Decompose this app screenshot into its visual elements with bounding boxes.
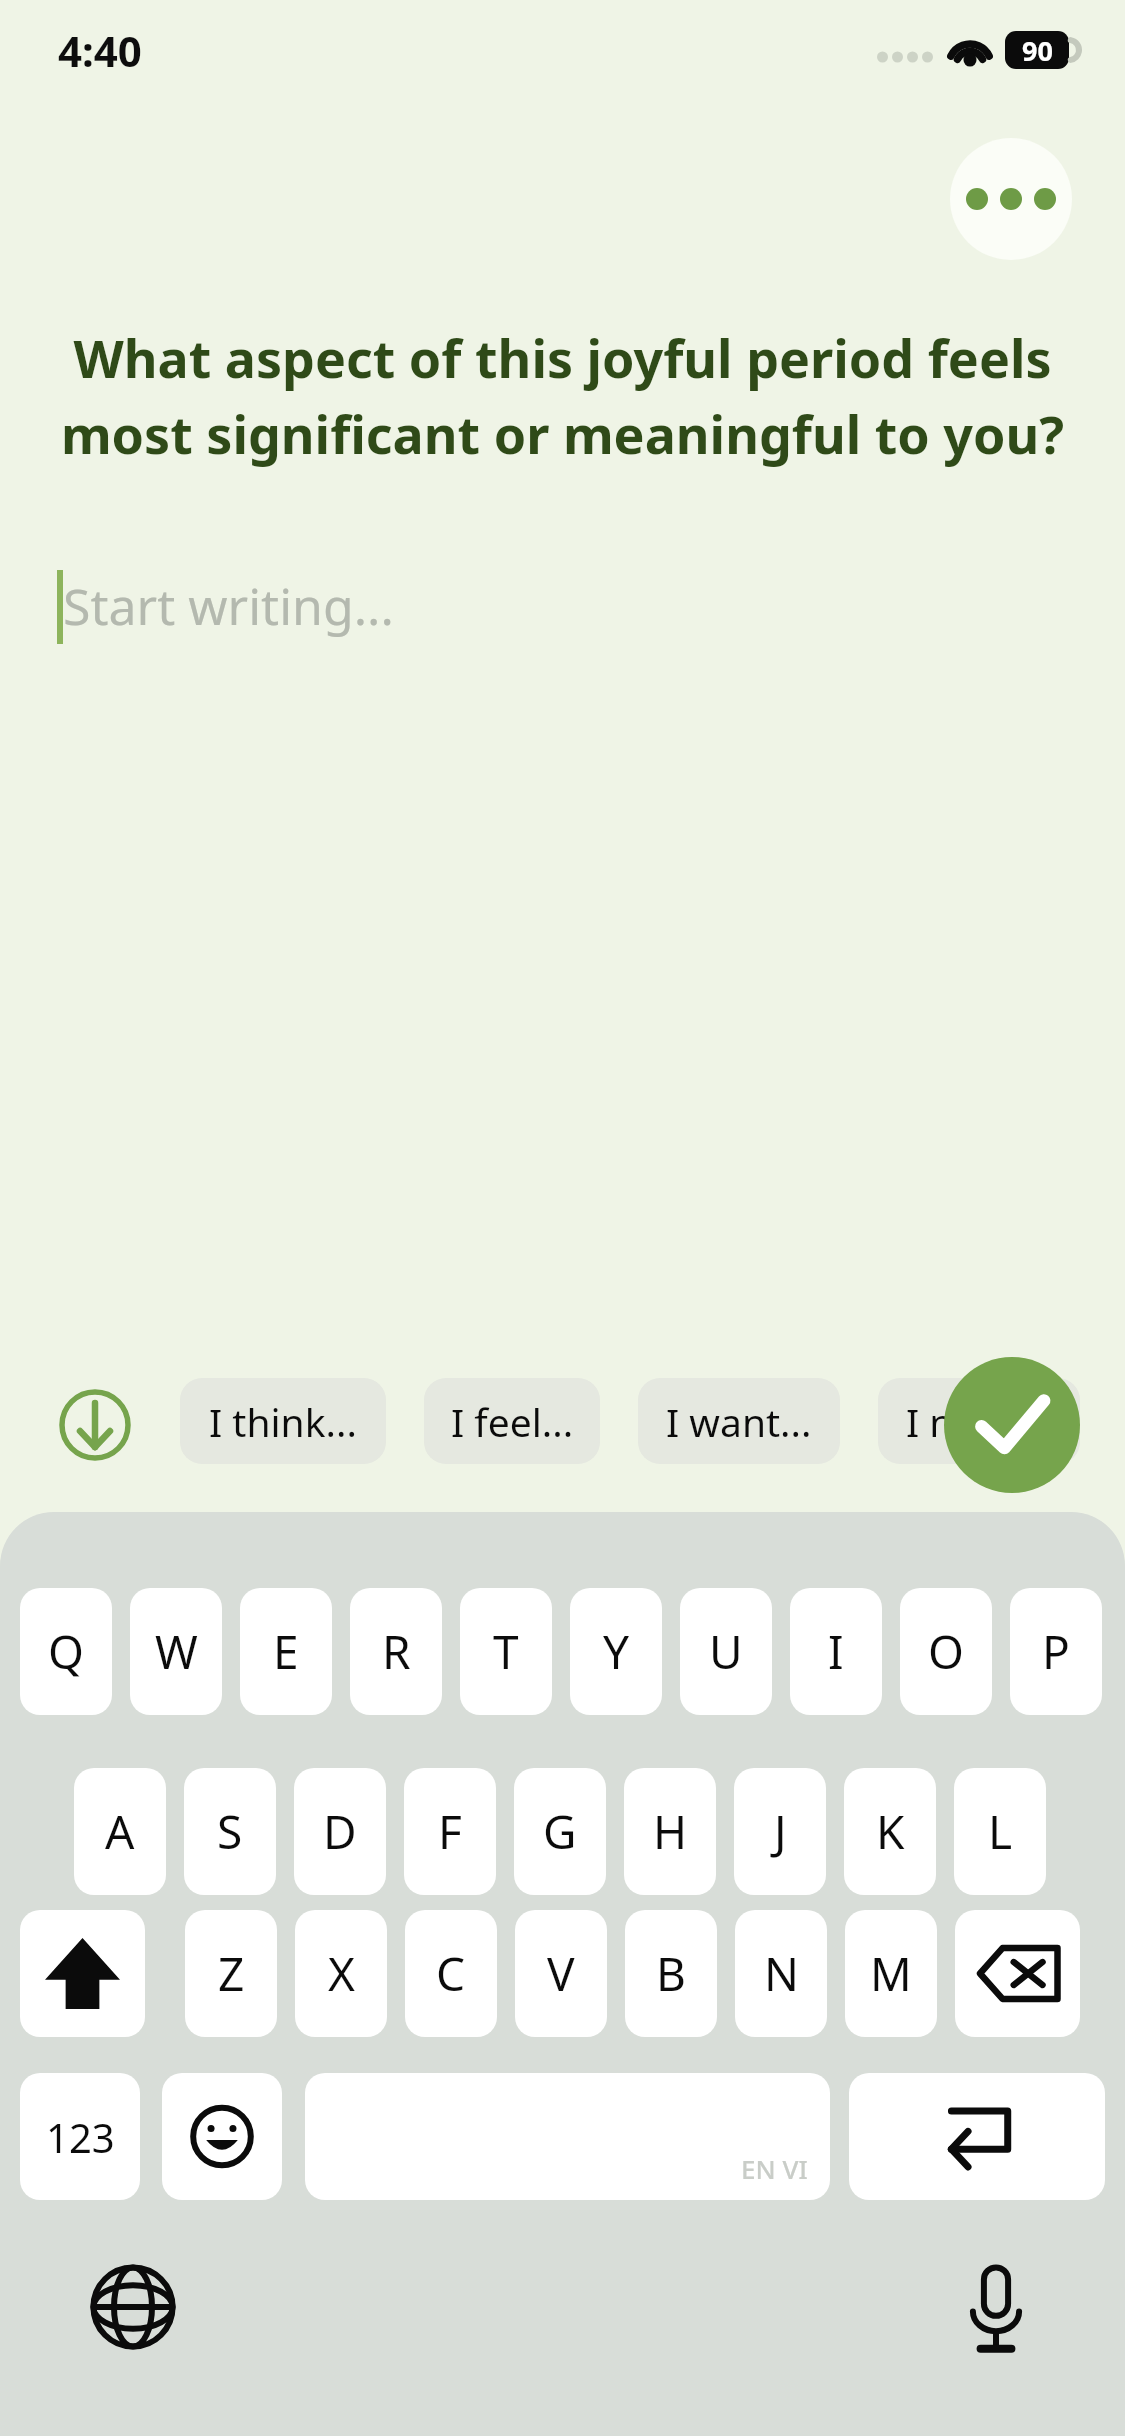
button[interactable]: I think... xyxy=(180,1378,386,1464)
button[interactable]: Z xyxy=(185,1910,277,2037)
button[interactable]: W xyxy=(130,1588,222,1715)
staticText: 4:40 xyxy=(58,22,142,79)
staticText: M xyxy=(870,1942,912,2005)
button[interactable]: 123 xyxy=(20,2073,140,2200)
button[interactable]: Enter xyxy=(849,2073,1105,2200)
button[interactable]: H xyxy=(624,1768,716,1895)
staticText: I xyxy=(828,1620,844,1683)
button[interactable]: Change language xyxy=(78,2252,188,2362)
button[interactable]: L xyxy=(954,1768,1046,1895)
staticText: H xyxy=(653,1800,688,1863)
button[interactable]: D xyxy=(294,1768,386,1895)
button[interactable]: Scroll down xyxy=(58,1388,132,1462)
staticText: J xyxy=(774,1800,787,1863)
button[interactable]: X xyxy=(295,1910,387,2037)
staticText: S xyxy=(217,1800,243,1863)
staticText: Z xyxy=(218,1942,245,2005)
button[interactable]: R xyxy=(350,1588,442,1715)
staticText: N xyxy=(764,1942,799,2005)
button[interactable]: I feel... xyxy=(424,1378,600,1464)
staticText: R xyxy=(382,1620,411,1683)
button[interactable]: Shift xyxy=(20,1910,145,2037)
button[interactable]: F xyxy=(404,1768,496,1895)
staticText: D xyxy=(323,1800,357,1863)
staticText: B xyxy=(656,1942,686,2005)
button[interactable]: P xyxy=(1010,1588,1102,1715)
button[interactable]: More options xyxy=(950,138,1072,260)
button[interactable]: Done xyxy=(944,1357,1080,1493)
button[interactable]: K xyxy=(844,1768,936,1895)
button[interactable]: M xyxy=(845,1910,937,2037)
staticText: Y xyxy=(603,1620,630,1683)
button[interactable]: Space xyxy=(305,2073,830,2200)
button[interactable]: V xyxy=(515,1910,607,2037)
button[interactable]: Voice input xyxy=(941,2252,1051,2362)
staticText: L xyxy=(988,1800,1013,1863)
staticText: T xyxy=(493,1620,519,1683)
button[interactable]: N xyxy=(735,1910,827,2037)
staticText: Start writing... xyxy=(63,572,394,640)
staticText: E xyxy=(273,1620,299,1683)
staticText: I think... xyxy=(209,1395,357,1448)
button[interactable]: S xyxy=(184,1768,276,1895)
button[interactable]: Start writing... xyxy=(0,548,1125,668)
button[interactable]: Emoji xyxy=(162,2073,282,2200)
staticText: I feel... xyxy=(451,1395,574,1448)
button[interactable]: T xyxy=(460,1588,552,1715)
button[interactable]: Q xyxy=(20,1588,112,1715)
staticText: I need... xyxy=(906,1395,1053,1448)
button[interactable]: Y xyxy=(570,1588,662,1715)
button[interactable]: C xyxy=(405,1910,497,2037)
staticText: K xyxy=(876,1800,905,1863)
staticText: F xyxy=(438,1800,462,1863)
button[interactable]: I xyxy=(790,1588,882,1715)
staticText: O xyxy=(928,1620,964,1683)
staticText: 90 xyxy=(1022,32,1053,69)
staticText: C xyxy=(436,1942,466,2005)
button[interactable]: O xyxy=(900,1588,992,1715)
staticText: Q xyxy=(48,1620,84,1683)
staticText: A xyxy=(105,1800,135,1863)
button[interactable]: G xyxy=(514,1768,606,1895)
staticText: EN VI xyxy=(741,2151,808,2186)
button[interactable]: B xyxy=(625,1910,717,2037)
staticText: I want... xyxy=(666,1395,812,1448)
staticText: W xyxy=(155,1620,198,1683)
staticText: U xyxy=(709,1620,743,1683)
button[interactable]: I need... xyxy=(878,1378,1080,1464)
staticText: V xyxy=(547,1942,575,2005)
button[interactable]: I want... xyxy=(638,1378,840,1464)
staticText: G xyxy=(543,1800,577,1863)
staticText: P xyxy=(1042,1620,1070,1683)
button[interactable]: E xyxy=(240,1588,332,1715)
button[interactable]: Backspace xyxy=(955,1910,1080,2037)
staticText: What aspect of this joyful period feels … xyxy=(56,322,1069,469)
staticText: X xyxy=(328,1942,355,2005)
button[interactable]: U xyxy=(680,1588,772,1715)
button[interactable]: J xyxy=(734,1768,826,1895)
staticText: 123 xyxy=(46,2110,115,2164)
button[interactable]: A xyxy=(74,1768,166,1895)
